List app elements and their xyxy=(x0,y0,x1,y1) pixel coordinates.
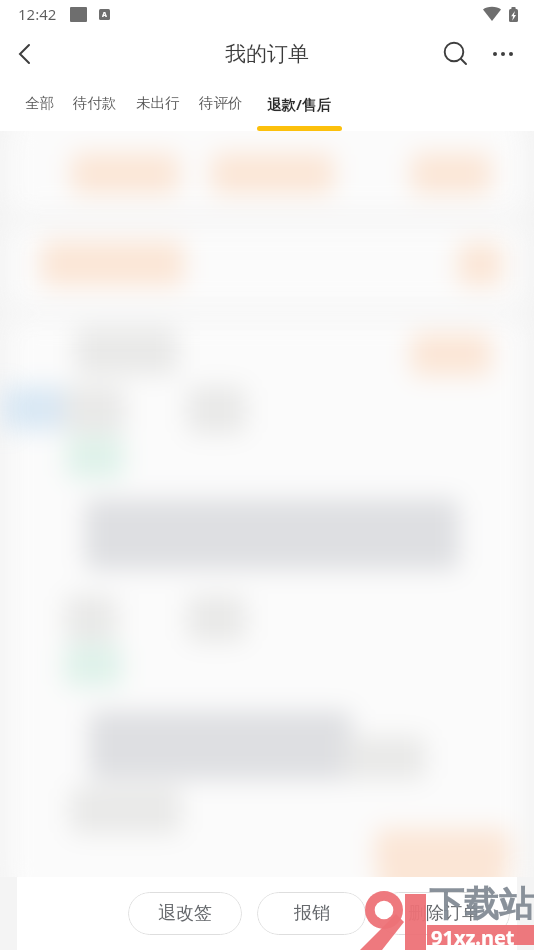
staticText: 12:42 xyxy=(18,4,57,24)
staticText: 下载站 xyxy=(429,882,534,926)
button[interactable]: 待付款 xyxy=(63,94,127,124)
staticText: 待付款 xyxy=(73,94,117,112)
button[interactable]: 删除订单 xyxy=(377,892,510,935)
button[interactable]: 退改签 xyxy=(128,892,242,935)
button[interactable]: 全部 xyxy=(16,94,63,124)
staticText: 我的订单 xyxy=(225,41,309,67)
staticText: 删除订单 xyxy=(408,902,480,925)
button[interactable]: 退款/售后 xyxy=(253,94,346,131)
staticText: A xyxy=(102,10,107,20)
staticText: 全部 xyxy=(25,94,54,112)
button[interactable]: 待评价 xyxy=(189,94,253,124)
staticText: 未出行 xyxy=(136,94,180,112)
staticText: 退改签 xyxy=(158,902,212,925)
staticText: 报销 xyxy=(294,902,330,925)
button[interactable]: 未出行 xyxy=(127,94,189,124)
staticText: 退款/售后 xyxy=(267,94,332,114)
button[interactable]: Search xyxy=(434,32,478,76)
button[interactable]: 报销 xyxy=(257,892,366,935)
staticText: 91xz.net xyxy=(431,924,515,950)
staticText: 待评价 xyxy=(199,94,243,112)
button[interactable]: Back xyxy=(0,30,48,78)
button[interactable]: More options xyxy=(481,32,525,76)
